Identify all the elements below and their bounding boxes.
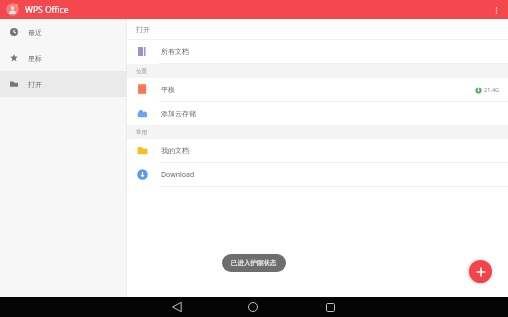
button[interactable]: Download bbox=[127, 163, 508, 186]
button[interactable]: New document bbox=[469, 260, 492, 283]
button[interactable]: 最近 bbox=[0, 19, 126, 45]
staticText: 已进入护眼状态 bbox=[231, 259, 277, 267]
button[interactable]: 我的文档 bbox=[127, 139, 508, 162]
staticText: Download bbox=[161, 170, 195, 180]
staticText: 平板 bbox=[161, 85, 175, 94]
staticText: 我的文档 bbox=[161, 146, 189, 155]
staticText: 星标 bbox=[28, 54, 42, 63]
button[interactable]: More options bbox=[489, 3, 503, 17]
button[interactable]: Account bbox=[6, 3, 19, 16]
button[interactable]: Back bbox=[167, 297, 187, 317]
button[interactable]: Recents bbox=[320, 297, 340, 317]
staticText: 打开 bbox=[136, 25, 150, 34]
staticText: 打开 bbox=[28, 80, 42, 89]
button[interactable]: 星标 bbox=[0, 45, 126, 71]
button[interactable]: 打开 bbox=[0, 71, 126, 97]
staticText: 21.4G bbox=[484, 86, 500, 94]
staticText: 所有文档 bbox=[161, 47, 189, 56]
button[interactable]: Home bbox=[243, 297, 263, 317]
staticText: 常用 bbox=[136, 129, 148, 136]
staticText: 位置 bbox=[136, 68, 148, 75]
staticText: 最近 bbox=[28, 28, 42, 37]
button[interactable]: 平板 bbox=[127, 78, 508, 101]
button[interactable]: 所有文档 bbox=[127, 40, 508, 63]
staticText: WPS Office bbox=[25, 4, 69, 16]
staticText: 添加云存储 bbox=[161, 109, 196, 118]
button[interactable]: 添加云存储 bbox=[127, 102, 508, 125]
